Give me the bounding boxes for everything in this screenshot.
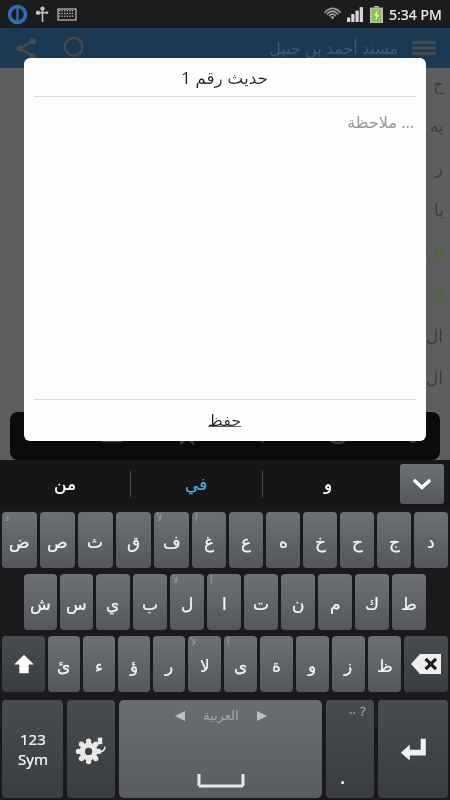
- button[interactable]: خ: [303, 512, 337, 568]
- button[interactable]: و: [263, 460, 394, 508]
- staticText: من: [54, 474, 77, 494]
- button[interactable]: ج: [377, 512, 411, 568]
- staticText: ء: [95, 656, 103, 676]
- button[interactable]: ذ: [2, 512, 37, 568]
- button[interactable]: ش: [24, 574, 57, 630]
- button[interactable]: Symbols: [2, 700, 63, 798]
- button[interactable]: س: [60, 574, 93, 630]
- staticText: لآ: [157, 513, 163, 523]
- staticText: د: [427, 532, 435, 552]
- staticText: ص: [47, 532, 68, 552]
- button[interactable]: ب: [133, 574, 167, 630]
- button[interactable]: Period: [326, 700, 374, 798]
- button[interactable]: ز: [332, 636, 365, 692]
- button[interactable]: لأ: [170, 574, 204, 630]
- staticText: لأ: [173, 575, 179, 585]
- staticText: ش: [30, 594, 51, 614]
- staticText: ف: [163, 532, 181, 552]
- button[interactable]: ع: [229, 512, 263, 568]
- staticText: ة: [272, 656, 281, 676]
- staticText: ث: [87, 532, 104, 552]
- staticText: ع: [241, 532, 252, 552]
- staticText: آ: [227, 637, 230, 647]
- staticText: أ: [210, 575, 213, 585]
- button[interactable]: Enter: [378, 700, 448, 798]
- staticText: ك: [365, 594, 380, 614]
- staticText: ال: [426, 368, 444, 388]
- button[interactable]: Toolbar action 3: [250, 423, 276, 449]
- button[interactable]: ئ: [48, 636, 80, 692]
- button[interactable]: ت: [244, 574, 278, 630]
- staticText: أ: [195, 513, 198, 523]
- staticText: ز: [344, 656, 353, 676]
- button[interactable]: Search: [62, 35, 88, 61]
- button[interactable]: و: [296, 636, 329, 692]
- staticText: ق: [127, 532, 141, 552]
- button[interactable]: ؤ: [118, 636, 150, 692]
- button[interactable]: ص: [40, 512, 75, 568]
- staticText: س: [66, 594, 87, 614]
- button[interactable]: د: [414, 512, 448, 568]
- staticText: ..: [349, 700, 356, 718]
- staticText: ن: [292, 594, 305, 614]
- button[interactable]: لآ: [188, 636, 221, 692]
- button[interactable]: Shift: [2, 636, 45, 692]
- button[interactable]: ة: [260, 636, 293, 692]
- button[interactable]: Space: [119, 700, 322, 798]
- staticText: و: [324, 474, 333, 494]
- staticText: ج: [389, 532, 400, 552]
- staticText: و: [308, 656, 317, 676]
- button[interactable]: آ: [224, 636, 257, 692]
- staticText: إذ: [431, 284, 444, 304]
- button[interactable]: Hide suggestions: [400, 464, 444, 504]
- staticText: ؤ: [130, 656, 139, 676]
- staticText: ئ: [57, 656, 71, 676]
- button[interactable]: ظ: [368, 636, 401, 692]
- button[interactable]: ه: [266, 512, 300, 568]
- staticText: حديث رقم 1: [181, 66, 269, 89]
- button[interactable]: ح: [340, 512, 374, 568]
- staticText: 123: [20, 729, 46, 749]
- button[interactable]: ط: [392, 574, 426, 630]
- button[interactable]: أ: [207, 574, 241, 630]
- staticText: حفظ: [208, 411, 242, 430]
- button[interactable]: Backspace: [404, 636, 448, 692]
- button[interactable]: Toolbar action 1: [99, 423, 125, 449]
- staticText: ر: [165, 656, 174, 676]
- button[interactable]: حفظ: [24, 400, 426, 441]
- staticText: ا: [222, 594, 227, 614]
- button[interactable]: Toolbar action 5: [400, 423, 426, 449]
- staticText: ظ: [377, 656, 393, 676]
- staticText: Sym: [18, 749, 48, 769]
- button[interactable]: ث: [78, 512, 113, 568]
- staticText: ط: [401, 594, 417, 614]
- button[interactable]: ء: [83, 636, 115, 692]
- button[interactable]: Toolbar action 0: [24, 423, 50, 449]
- button[interactable]: ن: [281, 574, 315, 630]
- button[interactable]: من: [0, 460, 130, 508]
- button[interactable]: ي: [96, 574, 130, 630]
- button[interactable]: ك: [355, 574, 389, 630]
- staticText: ال: [426, 242, 444, 262]
- staticText: خ: [315, 532, 326, 552]
- staticText: ?: [360, 702, 366, 720]
- button[interactable]: Menu: [410, 34, 438, 62]
- staticText: ى: [234, 656, 248, 676]
- button[interactable]: لآ: [154, 512, 189, 568]
- button[interactable]: Toolbar action 4: [325, 423, 351, 449]
- button[interactable]: م: [318, 574, 352, 630]
- button[interactable]: Share: [14, 35, 40, 61]
- button[interactable]: Settings: [67, 700, 115, 798]
- staticText: ذ: [5, 513, 10, 523]
- staticText: في: [185, 474, 208, 494]
- button[interactable]: ر: [153, 636, 185, 692]
- button[interactable]: في: [131, 460, 262, 508]
- button[interactable]: ق: [116, 512, 151, 568]
- button[interactable]: أ: [192, 512, 226, 568]
- staticText: 5:34 PM: [389, 5, 442, 24]
- staticText: غ: [204, 532, 215, 552]
- staticText: ت: [253, 594, 270, 614]
- staticText: ب: [142, 594, 159, 614]
- button[interactable]: Toolbar action 2: [174, 423, 200, 449]
- staticText: ض: [9, 532, 30, 552]
